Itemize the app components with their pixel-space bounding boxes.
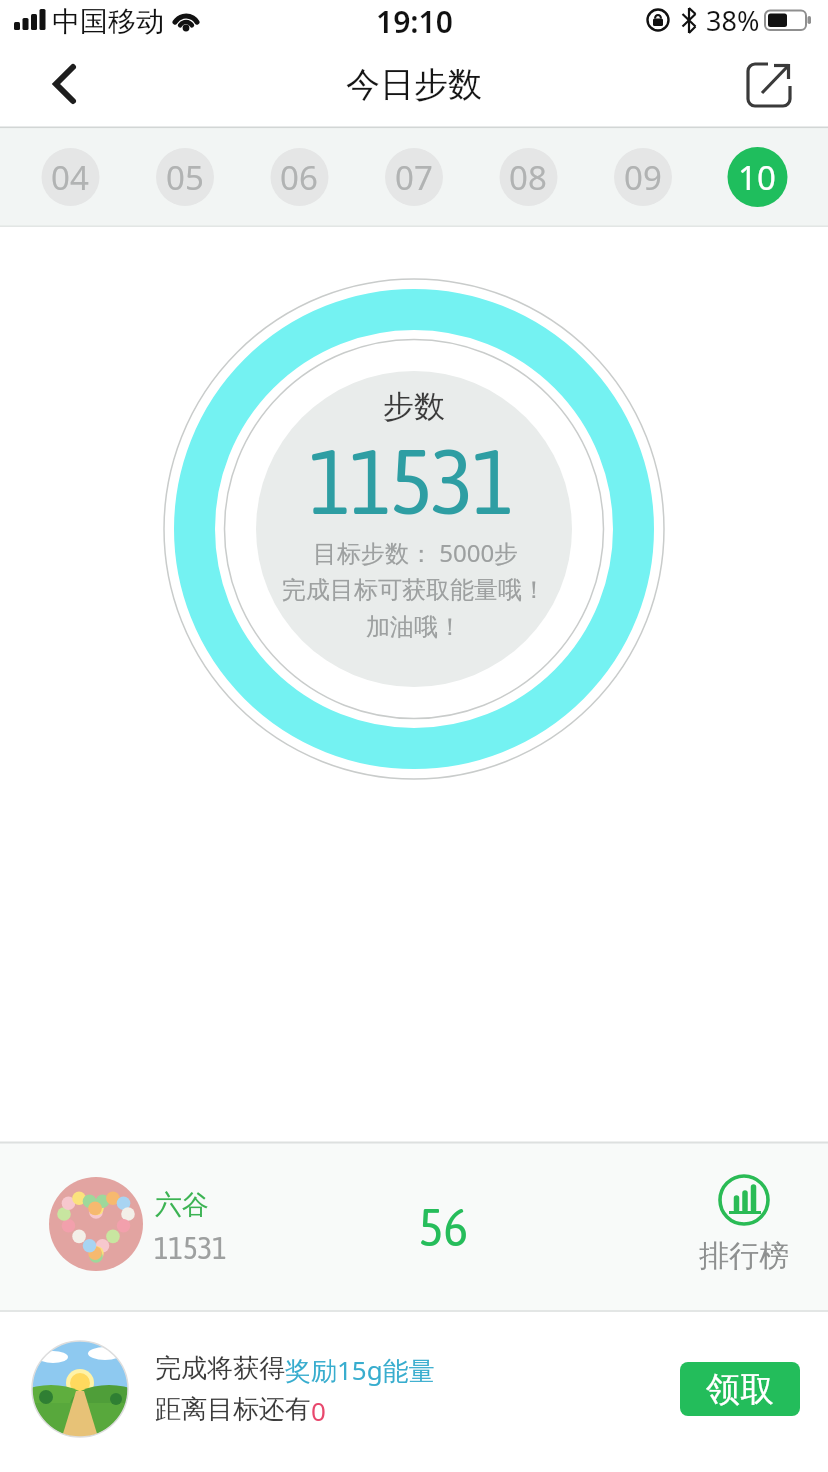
staticText: 排行榜 xyxy=(699,1237,789,1275)
staticText: 09 xyxy=(624,155,662,200)
staticText: 11531 xyxy=(154,1230,227,1266)
staticText: 10 xyxy=(738,155,776,200)
staticText: 奖励15g能量 xyxy=(285,1352,435,1388)
staticText: 步数 xyxy=(383,387,445,426)
button[interactable] xyxy=(694,1168,794,1278)
button[interactable] xyxy=(614,148,672,206)
staticText: 六谷 xyxy=(155,1188,209,1222)
button[interactable]: 领取 xyxy=(680,1362,800,1416)
button[interactable] xyxy=(38,58,92,112)
staticText: 距离目标还有 xyxy=(155,1393,311,1426)
button[interactable] xyxy=(740,56,796,112)
staticText: 05 xyxy=(166,155,204,200)
staticText: 04 xyxy=(51,155,89,200)
staticText: 19:10 xyxy=(376,1,453,42)
staticText: 06 xyxy=(280,155,318,200)
button[interactable] xyxy=(385,148,443,206)
staticText: 0 xyxy=(311,1393,326,1428)
staticText: 38% xyxy=(706,2,760,39)
staticText: 中国移动 xyxy=(52,4,164,39)
staticText: 完成将获得 xyxy=(155,1352,285,1385)
staticText: 目标步数： 5000步 xyxy=(313,536,519,569)
button[interactable] xyxy=(41,148,99,206)
staticText: 56 xyxy=(419,1197,468,1257)
staticText: 11531 xyxy=(309,430,513,533)
button[interactable] xyxy=(156,148,214,206)
button[interactable] xyxy=(499,148,557,206)
staticText: 加油哦！ xyxy=(366,612,462,642)
staticText: 完成目标可获取能量哦！ xyxy=(282,575,546,605)
button[interactable] xyxy=(728,148,786,206)
staticText: 08 xyxy=(509,155,547,200)
staticText: 07 xyxy=(395,155,433,200)
button[interactable] xyxy=(270,148,328,206)
staticText: 今日步数 xyxy=(346,63,482,106)
staticText: 领取 xyxy=(706,1368,774,1411)
